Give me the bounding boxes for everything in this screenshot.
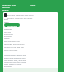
staticText: Information about the apps and settings …: [4, 54, 28, 67]
button[interactable]: Logo: [4, 13, 7, 17]
staticText: Settings and privacy policy: [2, 3, 16, 12]
staticText: and data: [4, 18, 12, 24]
staticText: Personalise the settings and privacy opt…: [4, 40, 25, 52]
staticText: Continue: [7, 24, 18, 27]
staticText: Settings for you and your account today: [4, 28, 13, 39]
staticText: account settings and your privacy contro…: [7, 14, 34, 20]
staticText: Help: [30, 3, 36, 6]
button[interactable]: Continue: [4, 23, 20, 27]
